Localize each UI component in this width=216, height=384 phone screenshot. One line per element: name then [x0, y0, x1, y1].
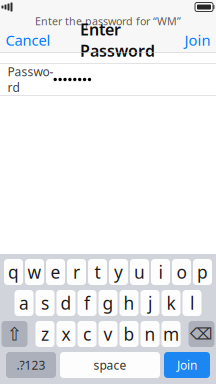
staticText: Enter Password — [80, 19, 155, 61]
button[interactable]: q — [4, 259, 23, 285]
button[interactable]: Cancel — [0, 28, 59, 52]
button[interactable]: g — [98, 290, 117, 316]
button[interactable]: j — [140, 290, 159, 316]
button[interactable]: r — [67, 259, 86, 285]
staticText: l — [190, 291, 194, 314]
staticText: Join — [184, 30, 210, 50]
button[interactable]: m — [161, 321, 180, 347]
button[interactable]: c — [77, 321, 96, 347]
staticText: o — [176, 260, 186, 283]
button[interactable]: space — [60, 352, 160, 378]
button[interactable]: w — [25, 259, 44, 285]
staticText: space — [93, 357, 126, 373]
button[interactable]: o — [172, 259, 191, 285]
staticText: k — [166, 291, 175, 314]
staticText: z — [41, 322, 49, 345]
staticText: s — [41, 291, 49, 314]
button[interactable]: .?123 — [6, 352, 56, 378]
button[interactable]: s — [35, 290, 54, 316]
button[interactable]: Join — [175, 28, 216, 52]
button[interactable]: t — [88, 259, 107, 285]
staticText: q — [8, 260, 19, 283]
button[interactable]: a — [14, 290, 33, 316]
staticText: a — [19, 291, 29, 314]
staticText: .?123 — [16, 357, 45, 373]
staticText: b — [123, 322, 134, 345]
staticText: h — [123, 291, 134, 314]
button[interactable]: Password — [0, 64, 216, 95]
staticText: d — [60, 291, 71, 314]
button[interactable]: n — [140, 321, 159, 347]
staticText: j — [148, 291, 152, 314]
button[interactable]: h — [119, 290, 138, 316]
staticText: u — [134, 260, 145, 283]
staticText: e — [50, 260, 60, 283]
staticText: w — [27, 260, 41, 283]
staticText: i — [158, 260, 162, 283]
staticText: Password — [7, 64, 53, 95]
staticText: v — [103, 322, 112, 345]
button[interactable]: e — [46, 259, 65, 285]
staticText: Cancel — [5, 30, 50, 50]
button[interactable]: p — [193, 259, 212, 285]
button[interactable]: y — [109, 259, 128, 285]
staticText: x — [61, 322, 70, 345]
staticText: y — [114, 260, 123, 283]
staticText: ⌫ — [190, 325, 213, 343]
button[interactable]: k — [161, 290, 180, 316]
staticText: Join — [177, 357, 197, 373]
staticText: p — [197, 260, 208, 283]
button[interactable]: Delete — [188, 321, 214, 347]
button[interactable]: v — [98, 321, 117, 347]
button[interactable]: x — [56, 321, 75, 347]
staticText: Enter the password for “WM” — [35, 14, 181, 28]
staticText: r — [73, 260, 80, 283]
button[interactable]: b — [119, 321, 138, 347]
staticText: f — [84, 291, 90, 314]
staticText: t — [94, 260, 100, 283]
button[interactable]: d — [56, 290, 75, 316]
button[interactable]: z — [35, 321, 54, 347]
button[interactable]: i — [151, 259, 170, 285]
button[interactable]: f — [77, 290, 96, 316]
staticText: ⇧ — [6, 323, 22, 345]
button[interactable]: Join — [164, 352, 210, 378]
staticText: g — [102, 291, 113, 314]
button[interactable]: l — [182, 290, 201, 316]
button[interactable]: Shift — [1, 321, 27, 347]
staticText: n — [144, 322, 155, 345]
staticText: c — [83, 322, 91, 345]
button[interactable]: u — [130, 259, 149, 285]
staticText: m — [163, 322, 179, 345]
